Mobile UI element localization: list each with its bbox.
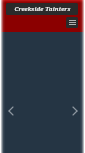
button[interactable]: Menu — [66, 17, 78, 28]
button[interactable]: Creekside Tainters — [6, 3, 78, 15]
staticText: Creekside Tainters — [14, 5, 71, 13]
button[interactable]: Previous — [5, 105, 16, 117]
button[interactable]: Next — [69, 105, 80, 117]
